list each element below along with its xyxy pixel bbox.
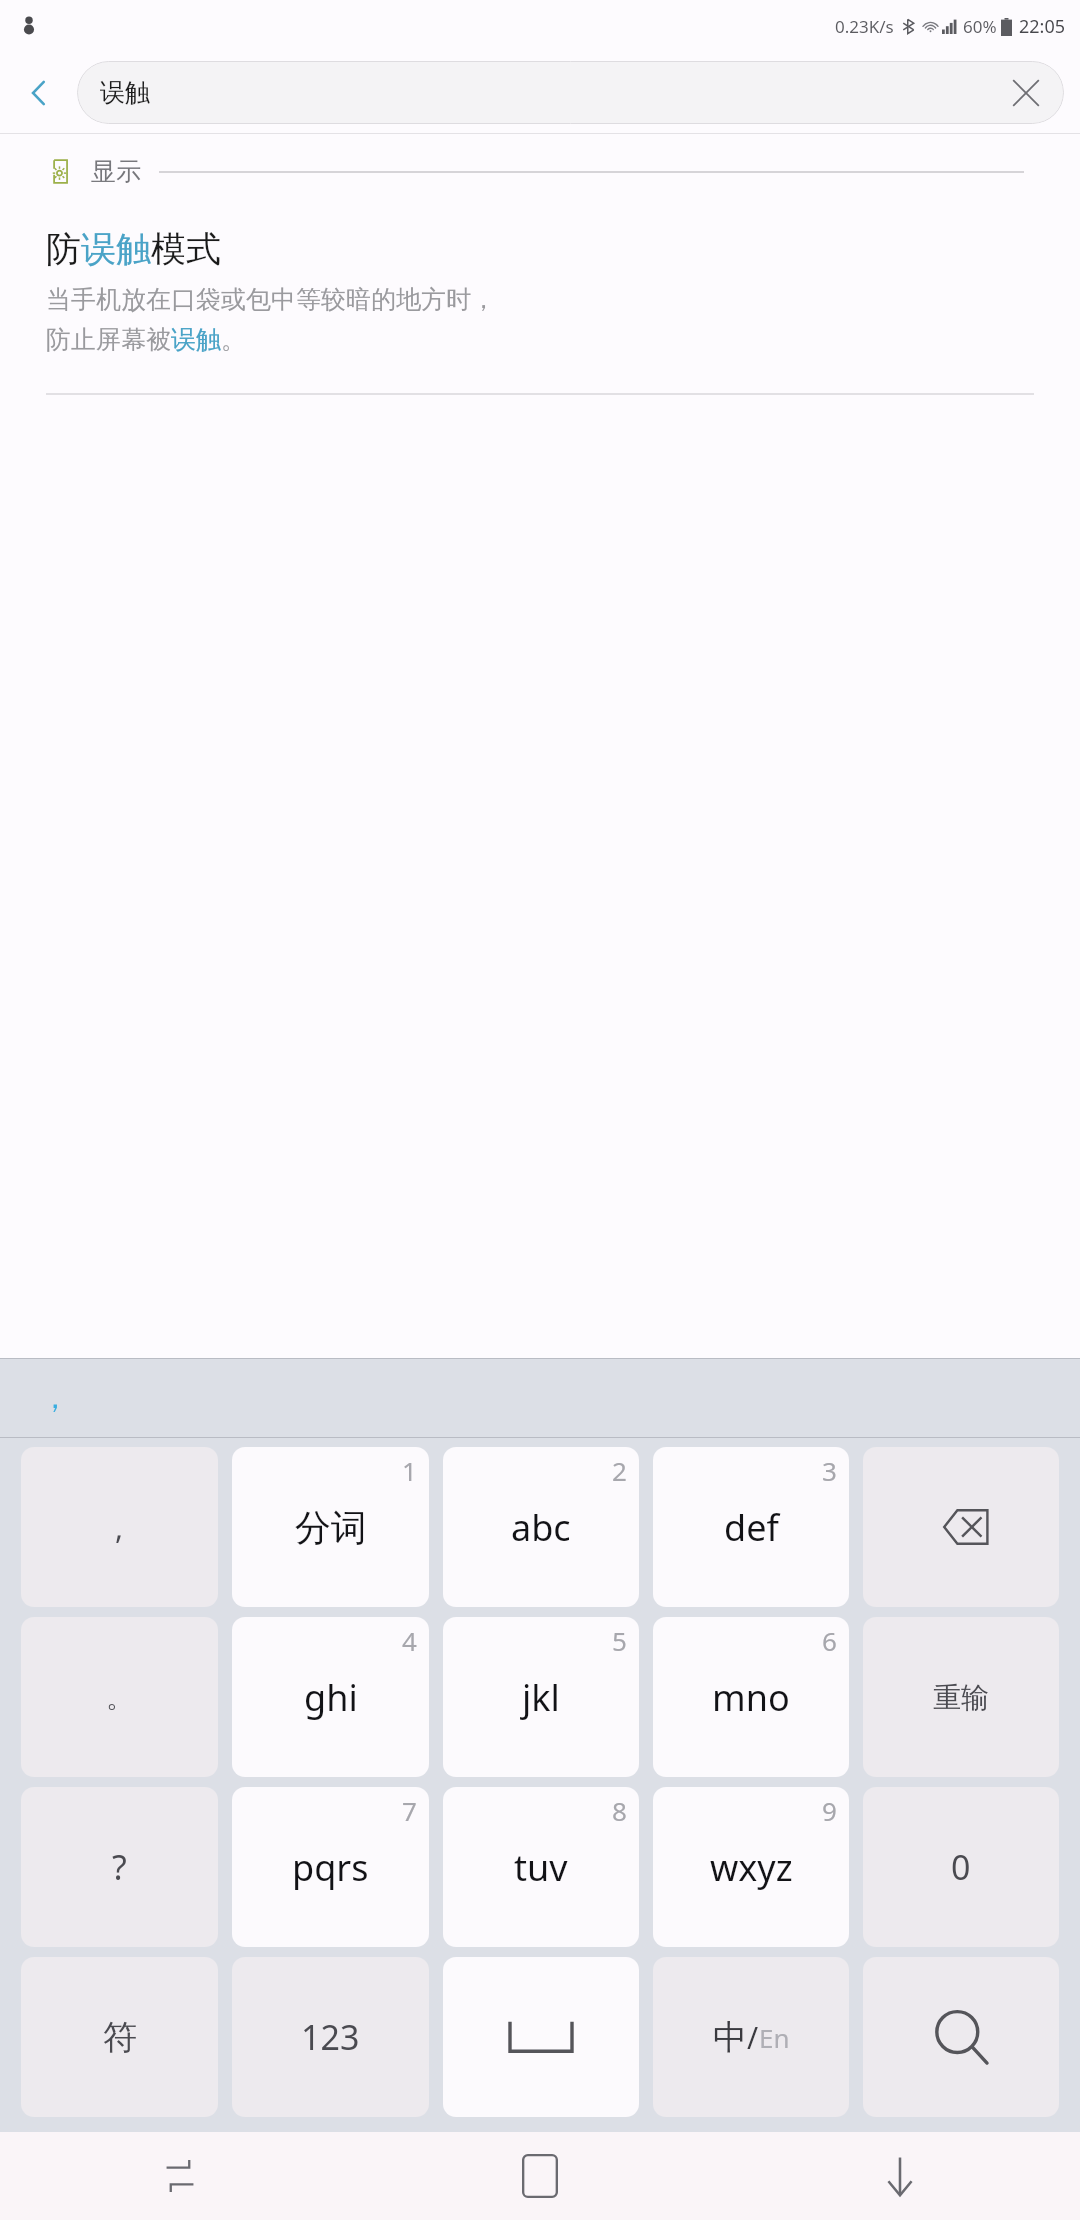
button[interactable]: 0 bbox=[863, 1787, 1059, 1947]
staticText: 5 bbox=[612, 1623, 627, 1658]
button[interactable]: tuv bbox=[443, 1787, 639, 1947]
staticText: 中 bbox=[713, 2016, 747, 2059]
staticText: abc bbox=[511, 1503, 571, 1552]
staticText: mno bbox=[712, 1673, 790, 1722]
button[interactable]: Search bbox=[863, 1957, 1059, 2117]
button[interactable]: ? bbox=[21, 1787, 218, 1947]
staticText: 当手机放在口袋或包中等较暗的地方时， 防止屏幕被误触。 bbox=[46, 284, 496, 355]
button[interactable]: def bbox=[653, 1447, 849, 1607]
button[interactable]: Clear bbox=[988, 61, 1064, 124]
staticText: ghi bbox=[304, 1673, 358, 1722]
staticText: 6 bbox=[822, 1623, 837, 1658]
staticText: 22:05 bbox=[1019, 14, 1066, 39]
staticText: 1 bbox=[402, 1453, 417, 1488]
staticText: ? bbox=[112, 1844, 127, 1890]
staticText: pqrs bbox=[292, 1843, 369, 1892]
button[interactable]: wxyz bbox=[653, 1787, 849, 1947]
button[interactable]: mno bbox=[653, 1617, 849, 1777]
staticText: 9 bbox=[822, 1793, 837, 1828]
button[interactable]: 。 bbox=[21, 1617, 218, 1777]
staticText: 0.23K/s bbox=[835, 15, 894, 38]
button[interactable]: pqrs bbox=[232, 1787, 429, 1947]
staticText: tuv bbox=[514, 1843, 568, 1892]
button[interactable]: ， bbox=[40, 1379, 70, 1417]
button[interactable]: 误触 bbox=[77, 61, 1064, 124]
button[interactable]: ghi bbox=[232, 1617, 429, 1777]
staticText: 0 bbox=[951, 1844, 971, 1890]
button[interactable]: abc bbox=[443, 1447, 639, 1607]
staticText: 显示 bbox=[91, 156, 141, 187]
button[interactable]: 符 bbox=[21, 1957, 218, 2117]
staticText: , bbox=[115, 1507, 124, 1548]
staticText: 123 bbox=[301, 2014, 360, 2060]
button[interactable]: Hide keyboard bbox=[720, 2132, 1080, 2220]
button[interactable]: , bbox=[21, 1447, 218, 1607]
staticText: 7 bbox=[402, 1793, 417, 1828]
button[interactable]: 分词 bbox=[232, 1447, 429, 1607]
staticText: 分词 bbox=[295, 1505, 367, 1550]
button[interactable]: jkl bbox=[443, 1617, 639, 1777]
staticText: 3 bbox=[822, 1453, 837, 1488]
button[interactable]: Home bbox=[360, 2132, 720, 2220]
button[interactable]: Chinese English toggle bbox=[653, 1957, 849, 2117]
staticText: 防误触模式 bbox=[46, 227, 221, 271]
staticText: 误触 bbox=[100, 77, 150, 108]
button[interactable]: Recents bbox=[0, 2132, 360, 2220]
staticText: 60% bbox=[963, 15, 997, 38]
staticText: def bbox=[724, 1503, 779, 1552]
button[interactable]: 防误触模式 bbox=[0, 227, 1080, 355]
button[interactable]: Back bbox=[0, 52, 77, 133]
button[interactable]: 重输 bbox=[863, 1617, 1059, 1777]
staticText: 4 bbox=[402, 1623, 417, 1658]
staticText: 2 bbox=[612, 1453, 627, 1488]
button[interactable]: 123 bbox=[232, 1957, 429, 2117]
staticText: 重输 bbox=[933, 1680, 989, 1715]
staticText: 符 bbox=[103, 2016, 137, 2059]
staticText: 8 bbox=[612, 1793, 627, 1828]
staticText: 。 bbox=[106, 1680, 134, 1715]
button[interactable]: Backspace bbox=[863, 1447, 1059, 1607]
staticText: En bbox=[759, 2020, 790, 2055]
staticText: / bbox=[747, 2017, 759, 2058]
staticText: jkl bbox=[522, 1673, 560, 1722]
button[interactable]: Space bbox=[443, 1957, 639, 2117]
staticText: wxyz bbox=[710, 1843, 793, 1892]
